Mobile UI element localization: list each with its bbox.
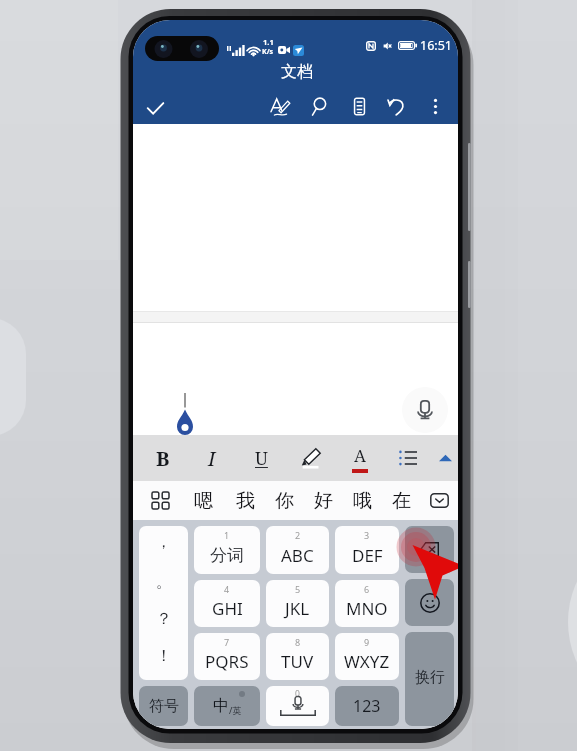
staticText: 嗯 bbox=[194, 489, 213, 513]
button[interactable]: Keyboard layouts bbox=[139, 481, 181, 520]
button[interactable]: Done bbox=[135, 88, 175, 128]
staticText: ABC bbox=[281, 544, 314, 567]
button[interactable]: 5 bbox=[266, 580, 329, 627]
staticText: K/s bbox=[262, 47, 274, 57]
button[interactable]: Expand candidates bbox=[420, 481, 458, 520]
staticText: 符号 bbox=[149, 697, 179, 716]
button[interactable]: Enter bbox=[405, 632, 454, 726]
staticText: /英 bbox=[229, 704, 242, 716]
staticText: B bbox=[156, 445, 170, 472]
button[interactable]: Symbols bbox=[139, 686, 188, 726]
staticText: PQRS bbox=[205, 650, 249, 673]
button[interactable]: Switch language bbox=[194, 686, 260, 726]
staticText: 文档 bbox=[281, 62, 313, 82]
staticText: 1.1 bbox=[263, 37, 274, 47]
button[interactable]: Space bbox=[266, 686, 329, 726]
staticText: 8 bbox=[295, 636, 301, 648]
button[interactable]: 在 bbox=[382, 481, 420, 520]
staticText: ， bbox=[156, 533, 171, 552]
staticText: 好 bbox=[314, 489, 333, 513]
button[interactable]: 8 bbox=[266, 633, 329, 680]
button[interactable]: Bold bbox=[138, 435, 187, 481]
staticText: 7 bbox=[224, 636, 230, 648]
staticText: 16:51 bbox=[420, 37, 452, 54]
staticText: 换行 bbox=[415, 668, 445, 687]
staticText: 9 bbox=[364, 636, 370, 648]
button[interactable]: 嗯 bbox=[181, 481, 226, 520]
button[interactable]: Underline bbox=[236, 435, 286, 481]
button[interactable]: 3 bbox=[335, 526, 399, 574]
button[interactable]: Voice input bbox=[402, 387, 448, 433]
staticText: 分词 bbox=[210, 545, 244, 566]
button[interactable]: 9 bbox=[335, 633, 399, 680]
staticText: ！ bbox=[156, 646, 172, 666]
staticText: 3 bbox=[364, 529, 370, 541]
staticText: JKL bbox=[285, 597, 310, 620]
button[interactable]: Highlight bbox=[286, 435, 335, 481]
staticText: DEF bbox=[352, 544, 383, 567]
button[interactable]: Undo bbox=[379, 88, 415, 124]
staticText: 中 bbox=[213, 696, 229, 716]
staticText: I bbox=[208, 445, 216, 472]
staticText: WXYZ bbox=[344, 650, 390, 673]
button[interactable]: 我 bbox=[226, 481, 264, 520]
staticText: ？ bbox=[156, 609, 172, 629]
button[interactable]: More options bbox=[417, 88, 453, 124]
staticText: 123 bbox=[353, 695, 381, 717]
staticText: 我 bbox=[236, 489, 255, 513]
button[interactable]: Collapse toolbar bbox=[432, 435, 458, 481]
staticText: U bbox=[255, 446, 268, 471]
button[interactable]: 1 bbox=[194, 526, 260, 574]
staticText: TUV bbox=[281, 650, 314, 673]
staticText: GHI bbox=[212, 597, 243, 620]
staticText: 0 bbox=[295, 688, 300, 700]
staticText: 4 bbox=[224, 583, 230, 595]
staticText: MNO bbox=[346, 597, 388, 620]
staticText: 2 bbox=[295, 529, 301, 541]
staticText: 6 bbox=[364, 583, 370, 595]
button[interactable]: Outline bbox=[341, 88, 377, 124]
button[interactable]: 4 bbox=[194, 580, 260, 627]
button[interactable]: 哦 bbox=[342, 481, 382, 520]
button[interactable]: ， bbox=[139, 526, 188, 680]
button[interactable]: Backspace bbox=[405, 526, 454, 573]
staticText: 1 bbox=[224, 529, 230, 541]
button[interactable]: 好 bbox=[304, 481, 342, 520]
button[interactable]: 7 bbox=[194, 633, 260, 680]
staticText: A bbox=[354, 444, 366, 467]
button[interactable]: 你 bbox=[264, 481, 304, 520]
staticText: 你 bbox=[275, 489, 294, 513]
button[interactable]: Emoji bbox=[405, 579, 454, 626]
button[interactable]: Italic bbox=[187, 435, 236, 481]
button[interactable]: Search bbox=[302, 88, 338, 124]
staticText: 5 bbox=[295, 583, 301, 595]
staticText: 在 bbox=[392, 489, 411, 513]
button[interactable]: Font color bbox=[335, 435, 384, 481]
button[interactable]: Numbers bbox=[335, 686, 399, 726]
staticText: 。 bbox=[156, 573, 171, 592]
staticText: 哦 bbox=[353, 489, 372, 513]
button[interactable]: 6 bbox=[335, 580, 399, 627]
button[interactable]: 2 bbox=[266, 526, 329, 574]
button[interactable]: Bulleted list bbox=[384, 435, 432, 481]
button[interactable]: Ink annotation bbox=[262, 88, 298, 124]
